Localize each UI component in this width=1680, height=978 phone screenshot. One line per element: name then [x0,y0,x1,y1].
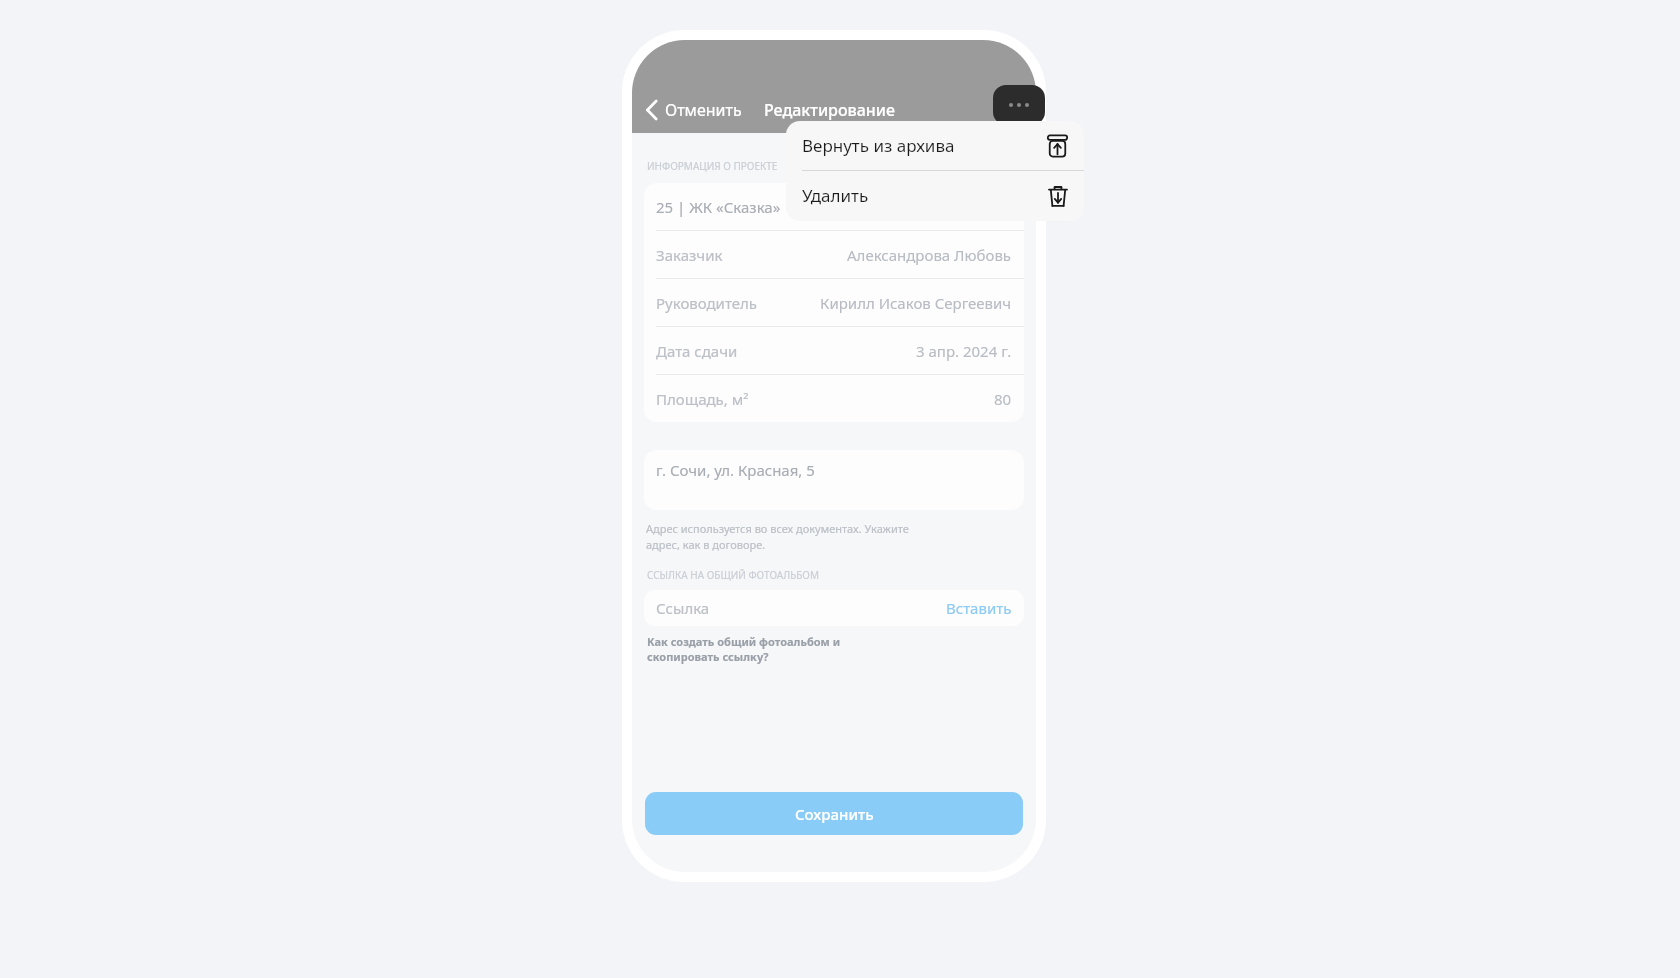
button[interactable]: Заказчик [644,231,1024,278]
staticText: Дата сдачи [656,341,738,361]
staticText: ССЫЛКА НА ОБЩИЙ ФОТОАЛЬБОМ [647,568,820,582]
staticText: Адрес используется во всех документах. У… [646,521,909,552]
staticText: Редактирование [764,99,896,121]
button[interactable]: Дата сдачи [644,327,1024,374]
button[interactable]: Отменить [640,91,748,129]
button[interactable]: More options [993,85,1045,125]
staticText: 25 | ЖК «Сказка» [656,197,781,217]
staticText: Удалить [802,184,869,207]
staticText: Руководитель [656,293,757,313]
button[interactable]: Удалить [786,171,1084,220]
button[interactable]: Вернуть из архива [786,121,1084,170]
button[interactable]: Ссылка [644,590,1024,626]
button[interactable]: Сохранить [645,792,1023,835]
staticText: Площадь, м² [656,389,749,409]
staticText: Сохранить [795,804,874,824]
staticText: 80 [994,389,1012,409]
staticText: Отменить [665,99,742,121]
button[interactable]: 25 | ЖК «Сказка» [644,183,1024,230]
staticText: Заказчик [656,245,723,265]
button[interactable]: Площадь, м² [644,375,1024,422]
staticText: Ссылка [656,598,710,618]
staticText: Вернуть из архива [802,134,955,157]
staticText: 3 апр. 2024 г. [916,341,1012,361]
button[interactable]: Руководитель [644,279,1024,326]
staticText: Кирилл Исаков Сергеевич [820,293,1012,313]
staticText: ИНФОРМАЦИЯ О ПРОЕКТЕ [647,159,778,173]
staticText: Вставить [946,598,1012,618]
staticText: Александрова Любовь [847,245,1012,265]
staticText: Как создать общий фотоальбом и скопирова… [647,634,841,664]
staticText: г. Сочи, ул. Красная, 5 [656,460,815,480]
button[interactable]: г. Сочи, ул. Красная, 5 [644,450,1024,510]
